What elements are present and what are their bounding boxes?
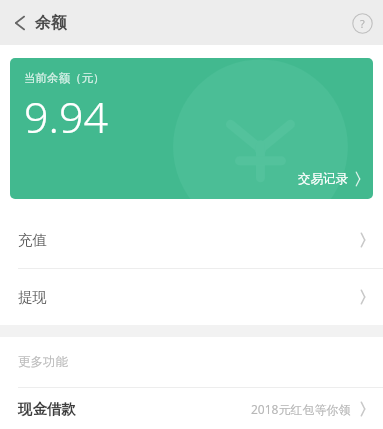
button[interactable]: 充值	[0, 212, 383, 268]
staticText: 余额	[35, 13, 67, 33]
staticText: 现金借款	[18, 400, 76, 418]
button[interactable]: Back	[0, 4, 38, 42]
staticText: ?	[360, 16, 365, 31]
staticText: 2018元红包等你领	[251, 401, 351, 417]
staticText: 提现	[18, 288, 47, 306]
button[interactable]: Help	[345, 6, 379, 40]
staticText: 充值	[18, 231, 47, 249]
button[interactable]: 交易记录	[298, 168, 364, 190]
staticText: 9.94	[24, 87, 109, 146]
staticText: 交易记录	[298, 171, 348, 187]
staticText: 当前余额（元）	[24, 71, 105, 85]
button[interactable]: 当前余额（元）	[10, 58, 373, 199]
staticText: 更多功能	[18, 354, 68, 370]
button[interactable]: 现金借款	[0, 388, 383, 429]
button[interactable]: 提现	[0, 269, 383, 325]
